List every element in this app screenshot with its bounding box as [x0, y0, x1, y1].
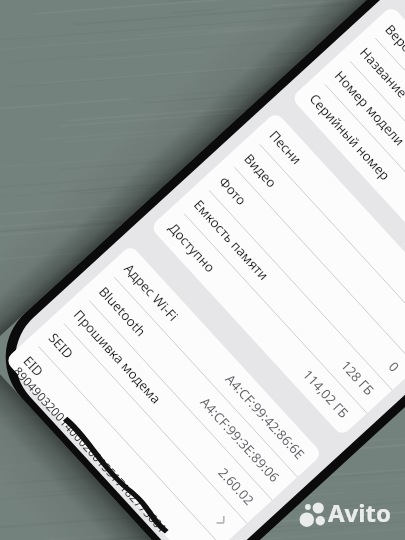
button[interactable]: Фото iPhone с экраном «Об этом устройств…	[0, 0, 405, 540]
